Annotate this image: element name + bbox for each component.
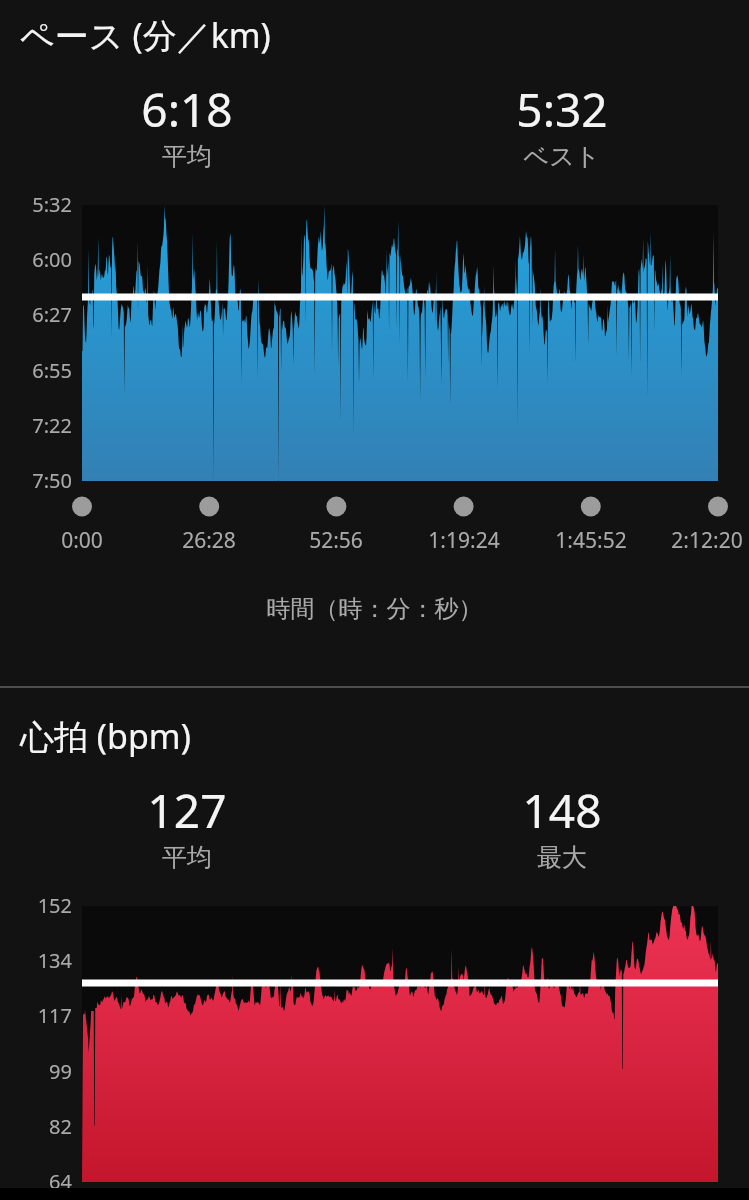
staticText: 5:32 [422, 78, 702, 141]
staticText: ベスト [422, 141, 702, 172]
staticText: 134 [0, 947, 72, 974]
staticText: 6:55 [0, 357, 72, 384]
staticText: 152 [0, 892, 72, 919]
staticText: 6:00 [0, 246, 72, 273]
staticText: 127 [47, 779, 327, 842]
staticText: 6:27 [0, 301, 72, 328]
staticText: 心拍 (bpm) [20, 713, 191, 759]
staticText: 99 [0, 1058, 72, 1085]
button[interactable]: 心拍 (bpm) [0, 0, 749, 1200]
staticText: 1:19:24 [324, 526, 604, 555]
staticText: 平均 [47, 842, 327, 873]
staticText: 時間（時：分：秒） [0, 594, 749, 624]
staticText: 平均 [47, 141, 327, 172]
staticText: 26:28 [69, 526, 349, 555]
staticText: 2:12:20 [567, 526, 749, 555]
staticText: 最大 [422, 842, 702, 873]
button[interactable]: ペース (分／km) [0, 0, 749, 1200]
staticText: 82 [0, 1113, 72, 1140]
staticText: 6:18 [47, 78, 327, 141]
staticText: 7:50 [0, 467, 72, 494]
staticText: 117 [0, 1002, 72, 1029]
staticText: 0:00 [0, 526, 222, 555]
staticText: 5:32 [0, 191, 72, 218]
staticText: 1:45:52 [451, 526, 731, 555]
staticText: 64 [0, 1168, 72, 1195]
staticText: 52:56 [196, 526, 476, 555]
staticText: ペース (分／km) [20, 12, 271, 58]
staticText: 7:22 [0, 412, 72, 439]
staticText: 148 [422, 779, 702, 842]
